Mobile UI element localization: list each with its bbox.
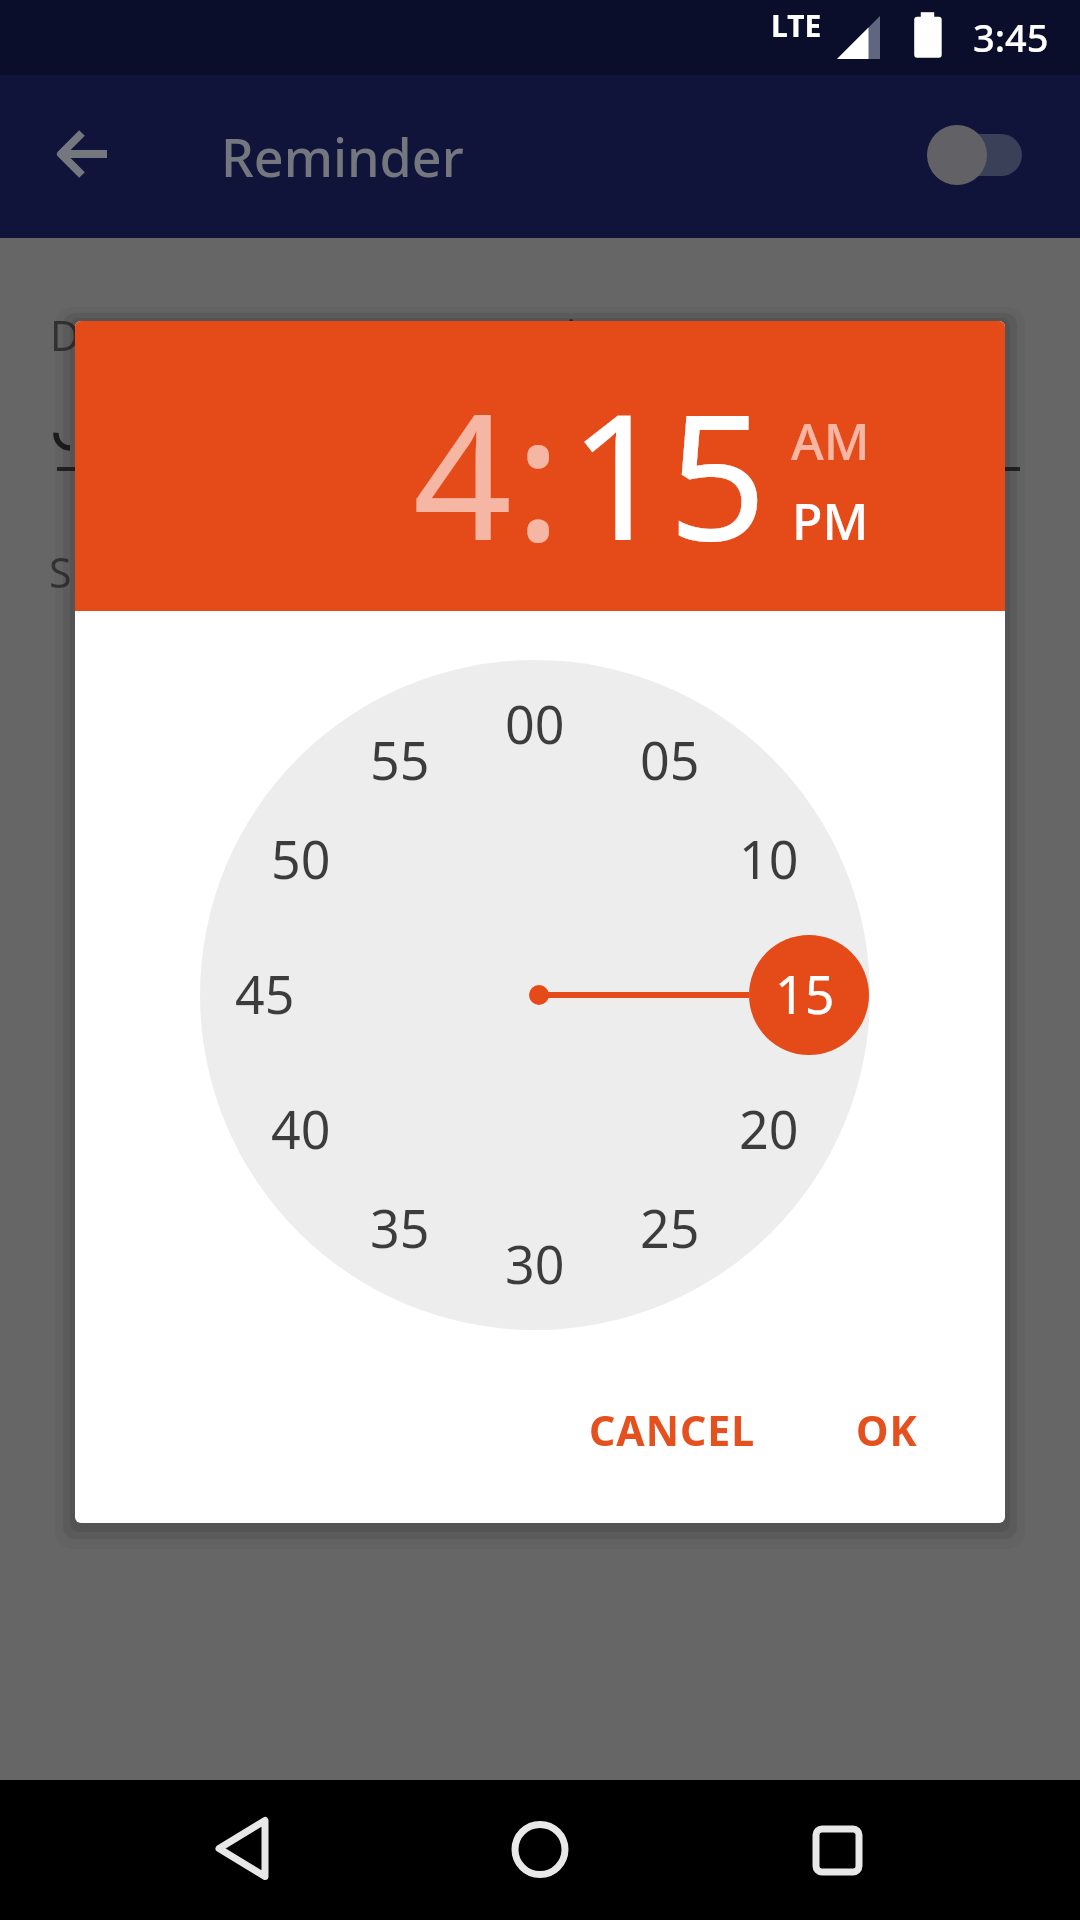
staticText: 15 (775, 958, 835, 1022)
button[interactable]: 30 (480, 1228, 590, 1292)
staticText: 3:45 (973, 11, 1049, 63)
staticText: OK (856, 1402, 918, 1458)
button[interactable]: 15 (750, 958, 860, 1022)
staticText: PM (792, 487, 869, 555)
staticText: 20 (739, 1093, 799, 1157)
button[interactable] (930, 134, 1022, 176)
button[interactable] (749, 935, 869, 1055)
staticText: 55 (370, 724, 430, 788)
staticText: 25 (640, 1192, 700, 1256)
button[interactable]: 25 (615, 1192, 725, 1256)
button[interactable]: 55 (345, 724, 455, 788)
button[interactable]: PM (760, 486, 900, 556)
button[interactable]: 35 (345, 1192, 455, 1256)
staticText: AM (791, 407, 870, 475)
button[interactable]: AM (760, 406, 900, 476)
button[interactable] (205, 1810, 285, 1890)
staticText: 10 (739, 823, 799, 887)
staticText: Time (543, 307, 638, 357)
button[interactable] (57, 127, 111, 181)
staticText: Snooze (49, 544, 189, 600)
button[interactable] (797, 1810, 877, 1890)
staticText: : (515, 356, 562, 586)
button[interactable]: 05 (615, 724, 725, 788)
staticText: 00 (505, 688, 565, 752)
button[interactable]: 00 (480, 688, 590, 752)
button[interactable]: 40 (246, 1093, 356, 1157)
button[interactable]: CANCEL (557, 1385, 787, 1475)
button[interactable]: 10 (714, 823, 824, 887)
staticText: LTE (771, 5, 822, 45)
staticText: 50 (271, 823, 331, 887)
staticText: Reminder (221, 121, 464, 192)
staticText: CANCEL (589, 1402, 756, 1458)
staticText: 40 (271, 1093, 331, 1157)
staticText: 30 (505, 1228, 565, 1292)
staticText: 15 (569, 355, 767, 585)
button[interactable]: 50 (246, 823, 356, 887)
staticText: 4 (413, 355, 512, 585)
staticText: 45 (235, 958, 295, 1022)
staticText: 05 (640, 724, 700, 788)
button[interactable]: OK (817, 1385, 957, 1475)
staticText: Date (50, 307, 141, 357)
button[interactable]: 45 (210, 958, 320, 1022)
staticText: 35 (370, 1192, 430, 1256)
button[interactable]: 20 (714, 1093, 824, 1157)
button[interactable] (500, 1810, 580, 1890)
